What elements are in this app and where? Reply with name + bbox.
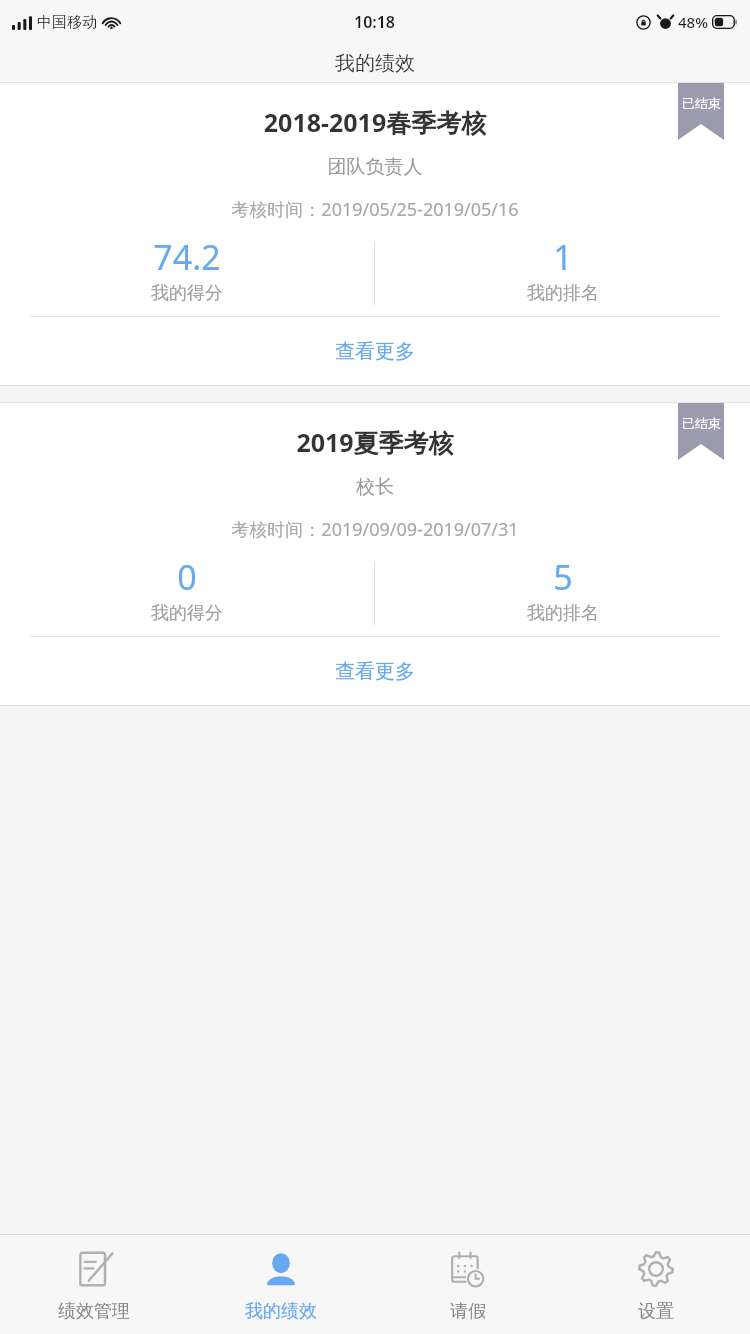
button[interactable]: 设置 [562,1235,750,1334]
staticText: 查看更多 [335,659,415,684]
button[interactable]: 74.2 [0,234,374,305]
staticText: 中国移动 [37,13,97,32]
staticText: 已结束 [682,415,721,431]
staticText: 已结束 [682,95,721,111]
button[interactable]: 我的绩效 [187,1235,374,1334]
staticText: 我的绩效 [335,51,415,76]
staticText: 我的排名 [527,602,599,625]
button[interactable]: 2019夏季考核 [0,403,750,705]
button[interactable]: 2018-2019春季考核 [0,83,750,385]
staticText: 10:18 [354,11,396,33]
staticText: 我的绩效 [245,1300,317,1323]
staticText: 考核时间：2019/09/09-2019/07/31 [0,517,750,542]
staticText: 5 [553,554,573,600]
button[interactable]: 1 [375,234,750,305]
staticText: 校长 [0,475,750,499]
button[interactable]: 请假 [374,1235,562,1334]
staticText: 团队负责人 [0,155,750,179]
staticText: 绩效管理 [58,1300,130,1323]
staticText: 我的得分 [151,282,223,305]
button[interactable]: 查看更多 [0,317,750,385]
button[interactable]: 5 [375,554,750,625]
staticText: 2018-2019春季考核 [40,105,710,139]
button[interactable]: 0 [0,554,374,625]
staticText: 设置 [638,1300,674,1323]
staticText: 查看更多 [335,339,415,364]
staticText: 0 [177,554,197,600]
staticText: 74.2 [153,234,221,280]
staticText: 我的得分 [151,602,223,625]
staticText: 2019夏季考核 [40,425,710,459]
staticText: 1 [553,234,573,280]
staticText: 48% [678,12,708,32]
staticText: 请假 [450,1300,486,1323]
button[interactable]: 绩效管理 [0,1235,187,1334]
staticText: 我的排名 [527,282,599,305]
button[interactable]: 查看更多 [0,637,750,705]
staticText: 考核时间：2019/05/25-2019/05/16 [0,197,750,222]
